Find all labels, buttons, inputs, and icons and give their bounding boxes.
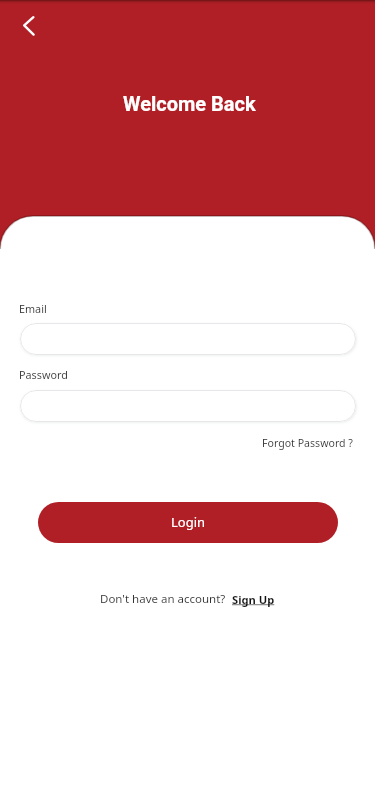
button[interactable]: [20, 323, 356, 355]
button[interactable]: Login: [38, 502, 338, 543]
button[interactable]: Sign Up: [232, 592, 275, 607]
button[interactable]: Back: [12, 13, 44, 45]
staticText: Email: [19, 301, 47, 316]
button[interactable]: [20, 390, 356, 422]
staticText: Don't have an account?: [100, 591, 226, 607]
staticText: Login: [171, 513, 206, 531]
staticText: Welcome Back: [123, 92, 256, 115]
button[interactable]: Forgot Password ?: [262, 436, 353, 450]
staticText: Password: [19, 367, 68, 382]
